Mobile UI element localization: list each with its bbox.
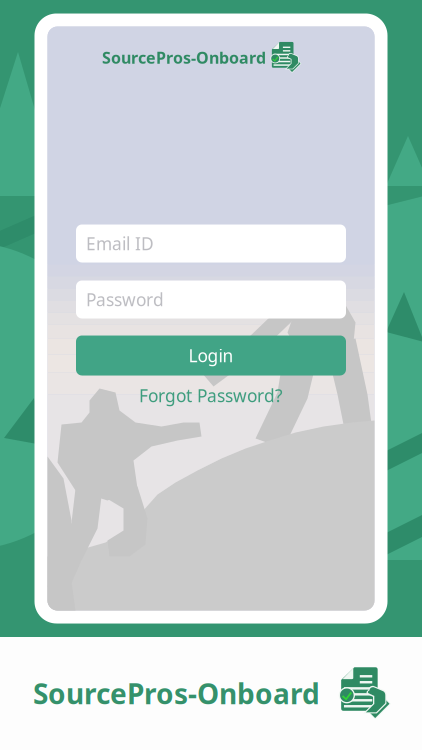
staticText: Password xyxy=(86,288,164,311)
button[interactable]: Login xyxy=(76,335,346,375)
staticText: SourcePros-Onboard xyxy=(33,675,320,712)
staticText: SourcePros-Onboard xyxy=(102,47,266,68)
staticText: Email ID xyxy=(86,232,154,255)
button[interactable]: Forgot Password? xyxy=(139,384,283,406)
staticText: Forgot Password? xyxy=(139,384,283,407)
staticText: Login xyxy=(188,344,233,367)
